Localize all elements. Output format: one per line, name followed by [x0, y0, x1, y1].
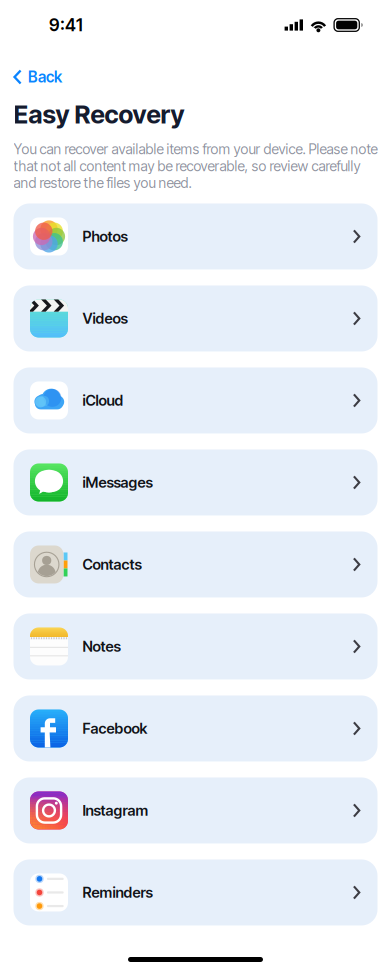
- staticText: 9:41: [49, 14, 83, 35]
- staticText: Back: [28, 68, 62, 86]
- button[interactable]: Instagram: [13, 777, 377, 843]
- button[interactable]: Contacts: [13, 531, 377, 597]
- button[interactable]: Notes: [13, 613, 377, 679]
- staticText: Reminders: [82, 884, 152, 901]
- staticText: You can recover available items from you…: [13, 141, 377, 191]
- button[interactable]: Reminders: [13, 859, 377, 925]
- staticText: Contacts: [82, 556, 141, 573]
- button[interactable]: Facebook: [13, 695, 377, 761]
- staticText: Notes: [82, 638, 120, 655]
- button[interactable]: Back: [0, 64, 72, 90]
- staticText: Videos: [82, 310, 127, 327]
- staticText: iCloud: [82, 392, 123, 409]
- button[interactable]: iCloud: [13, 367, 377, 433]
- button[interactable]: Videos: [13, 285, 377, 351]
- button[interactable]: iMessages: [13, 449, 377, 515]
- button[interactable]: Photos: [13, 203, 377, 269]
- staticText: Instagram: [82, 802, 148, 819]
- staticText: iMessages: [82, 474, 152, 491]
- staticText: Easy Recovery: [13, 99, 184, 130]
- staticText: Photos: [82, 228, 127, 245]
- staticText: Facebook: [82, 720, 147, 737]
